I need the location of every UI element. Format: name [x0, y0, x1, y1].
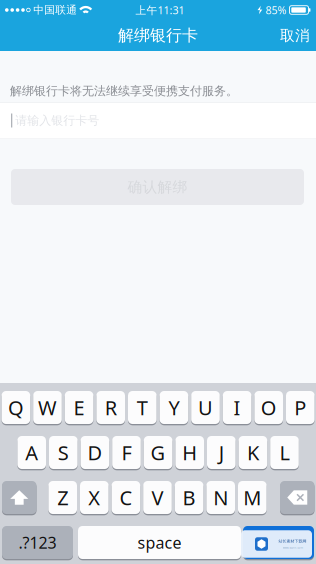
button[interactable]: Space	[78, 525, 241, 560]
button[interactable]: Z	[48, 480, 77, 515]
staticText: J	[219, 439, 224, 466]
button[interactable]: M	[238, 480, 267, 515]
staticText: I	[234, 394, 241, 421]
button[interactable]: C	[112, 480, 140, 515]
staticText: 取消	[280, 26, 310, 44]
button[interactable]: 取消	[266, 20, 310, 50]
button[interactable]: O	[254, 390, 283, 425]
button[interactable]: J	[207, 435, 236, 470]
button[interactable]: B	[175, 480, 203, 515]
button[interactable]: Y	[160, 390, 188, 425]
button[interactable]: X	[80, 480, 109, 515]
staticText: N	[213, 484, 228, 511]
button[interactable]: L	[270, 435, 299, 470]
button[interactable]: T	[128, 390, 157, 425]
staticText: Z	[57, 484, 68, 511]
button[interactable]: W	[33, 390, 62, 425]
button[interactable]: P	[286, 390, 315, 425]
staticText: L	[279, 439, 289, 466]
staticText: C	[119, 484, 132, 511]
staticText: K	[247, 439, 259, 466]
staticText: Y	[168, 394, 179, 421]
button[interactable]: G	[144, 435, 172, 470]
staticText: 解绑银行卡将无法继续享受便携支付服务。	[10, 84, 238, 98]
staticText: Q	[8, 394, 24, 421]
staticText: E	[74, 394, 85, 421]
button[interactable]: N	[206, 480, 235, 515]
staticText: X	[88, 484, 100, 511]
button[interactable]: Return	[243, 525, 314, 560]
staticText: S	[58, 439, 69, 466]
button[interactable]: I	[223, 390, 251, 425]
button[interactable]: E	[65, 390, 93, 425]
staticText: 请输入银行卡号	[15, 113, 99, 128]
staticText: 确认解绑	[127, 178, 187, 196]
staticText: .?123	[18, 532, 56, 553]
button[interactable]: Delete	[280, 480, 314, 515]
staticText: A	[25, 439, 38, 466]
staticText: M	[243, 484, 261, 511]
staticText: space	[137, 532, 181, 553]
button[interactable]: S	[49, 435, 78, 470]
staticText: 85%	[265, 3, 286, 17]
button[interactable]: Q	[2, 390, 30, 425]
staticText: H	[182, 439, 197, 466]
staticText: G	[151, 439, 166, 466]
button[interactable]: A	[17, 435, 46, 470]
button[interactable]: K	[239, 435, 267, 470]
staticText: P	[294, 394, 306, 421]
staticText: www.sccnn.com	[282, 546, 302, 549]
staticText: F	[121, 439, 131, 466]
staticText: R	[105, 394, 117, 421]
staticText: T	[137, 394, 148, 421]
staticText: U	[198, 394, 213, 421]
staticText: 站长素材下载网	[278, 539, 306, 544]
staticText: 解绑银行卡	[118, 26, 198, 45]
button[interactable]: D	[81, 435, 109, 470]
button[interactable]: H	[175, 435, 204, 470]
staticText: B	[183, 484, 196, 511]
button[interactable]: Shift	[2, 480, 36, 515]
staticText: 中国联通	[33, 3, 77, 16]
button[interactable]: V	[143, 480, 172, 515]
button[interactable]: Numbers and symbols	[2, 525, 73, 560]
staticText: O	[261, 394, 277, 421]
staticText: D	[87, 439, 102, 466]
staticText: W	[38, 394, 57, 421]
staticText: 上午11:31	[135, 3, 184, 17]
button[interactable]: F	[112, 435, 141, 470]
button[interactable]: U	[191, 390, 220, 425]
button[interactable]: R	[96, 390, 125, 425]
staticText: V	[151, 484, 163, 511]
